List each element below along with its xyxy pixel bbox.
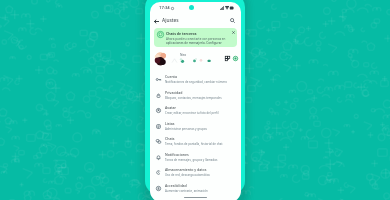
button[interactable]: Avatar [155, 102, 237, 117]
staticText: Notificaciones de seguridad, cambiar núm… [165, 80, 227, 84]
staticText: Administrar personas y grupos [165, 127, 207, 131]
button[interactable]: Almacenamiento y datos [155, 164, 237, 179]
staticText: Chats [165, 136, 175, 141]
staticText: Tonos de mensajes, grupos y llamadas [165, 158, 218, 162]
button[interactable]: Neo [150, 49, 241, 70]
button[interactable]: QR code [223, 54, 232, 63]
button[interactable]: Search [228, 16, 237, 25]
button[interactable]: Add [231, 54, 240, 63]
button[interactable]: Listas [155, 118, 237, 133]
button[interactable]: Close [230, 29, 236, 35]
staticText: Aumentar contraste, animación [165, 189, 208, 193]
button[interactable]: Cuenta [155, 71, 237, 86]
staticText: Chats de terceros [166, 31, 197, 36]
button[interactable]: Privacidad [155, 87, 237, 102]
button[interactable]: Back [152, 17, 160, 25]
staticText: Avatar [165, 105, 176, 110]
staticText: Cuenta [165, 74, 177, 79]
staticText: Crear, editar, encontrar tu foto del per… [165, 111, 219, 115]
staticText: Ajustes [162, 17, 179, 24]
staticText: Bloqueo, contactos, mensajes temporales [165, 96, 222, 100]
staticText: Tema, fondos de pantalla, historial de c… [165, 142, 223, 146]
staticText: Almacenamiento y datos [165, 167, 207, 172]
staticText: Listas [165, 121, 175, 126]
staticText: 17:34 [159, 5, 170, 11]
staticText: Privacidad [165, 90, 183, 95]
button[interactable]: Notificaciones [155, 149, 237, 164]
staticText: aplicaciones de mensajería. Configurar [166, 41, 222, 45]
button[interactable]: Accesibilidad [155, 180, 237, 195]
staticText: Uso de red, descarga automática [165, 173, 210, 177]
staticText: Ahora puedes conectarte con personas en … [166, 37, 231, 41]
button[interactable]: Chats [155, 133, 237, 148]
staticText: Accesibilidad [165, 183, 187, 188]
button[interactable]: Chats de terceros [154, 28, 237, 47]
staticText: Neo [180, 53, 187, 57]
staticText: Notificaciones [165, 152, 189, 157]
